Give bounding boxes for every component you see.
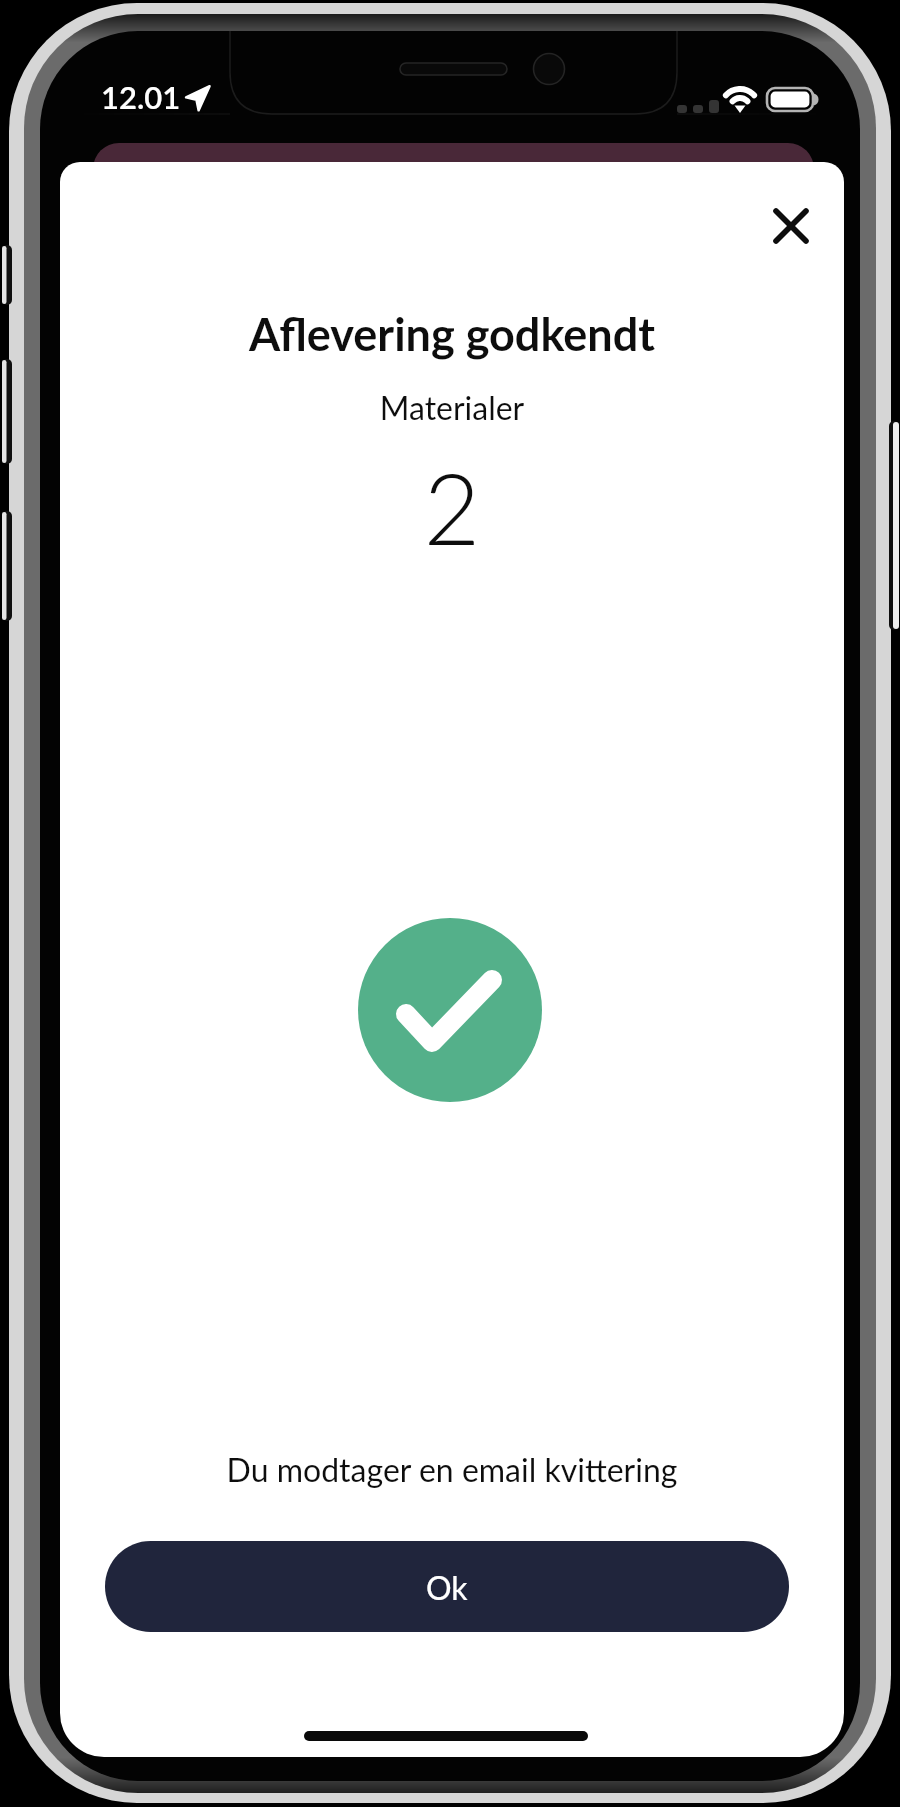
staticText: Materialer (60, 388, 844, 426)
staticText: Du modtager en email kvittering (60, 1450, 844, 1488)
button[interactable]: Close (748, 183, 834, 269)
staticText: Ok (426, 1568, 468, 1606)
staticText: 2 (60, 448, 844, 566)
staticText: Aflevering godkendt (60, 307, 844, 361)
staticText: 12.01 (101, 78, 181, 115)
button[interactable]: Ok (105, 1541, 789, 1632)
